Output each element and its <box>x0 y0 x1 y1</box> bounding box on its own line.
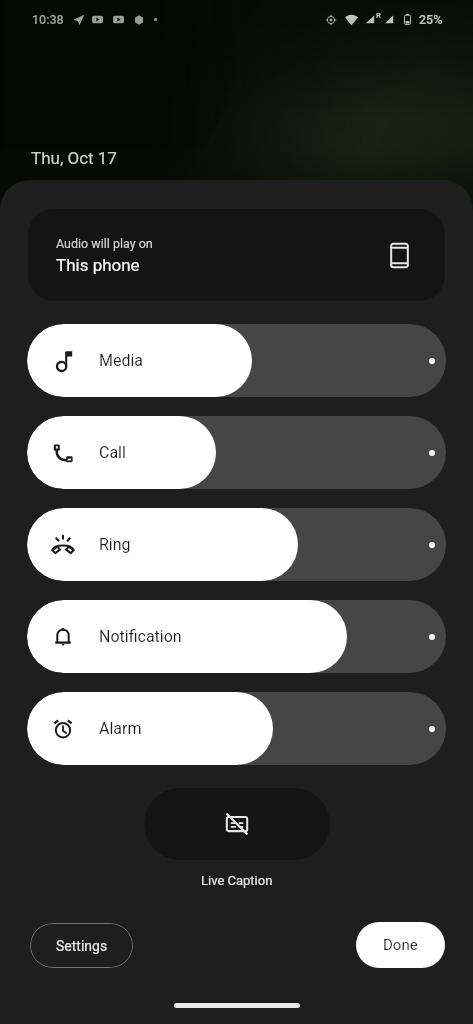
staticText: Done <box>383 936 418 954</box>
button[interactable]: Done <box>356 922 445 968</box>
staticText: Notification <box>99 627 182 646</box>
button[interactable]: Notification <box>27 600 446 673</box>
staticText: Thu, Oct 17 <box>31 148 117 168</box>
staticText: Live Caption <box>201 873 273 888</box>
button[interactable]: Ring <box>27 508 446 581</box>
button[interactable]: Call <box>27 416 446 489</box>
staticText: Media <box>99 351 144 370</box>
button[interactable]: Live Caption <box>144 788 330 860</box>
button[interactable]: Audio will play on <box>28 209 445 301</box>
staticText: Alarm <box>99 719 142 738</box>
staticText: 25% <box>419 12 443 27</box>
button[interactable]: Settings <box>30 923 133 968</box>
staticText: Call <box>99 443 126 462</box>
staticText: This phone <box>56 255 140 275</box>
staticText: 10:38 <box>32 12 64 27</box>
staticText: R <box>376 11 382 20</box>
staticText: Ring <box>99 535 131 554</box>
button[interactable]: Media <box>27 324 446 397</box>
button[interactable]: Alarm <box>27 692 446 765</box>
staticText: Settings <box>56 938 108 954</box>
staticText: Audio will play on <box>56 236 153 251</box>
